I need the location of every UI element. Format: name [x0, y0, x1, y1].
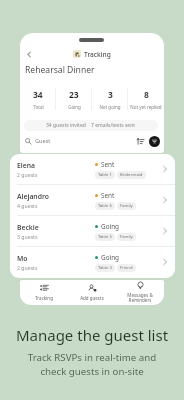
staticText: 3 guests	[17, 233, 38, 240]
button[interactable]: Guest	[25, 137, 136, 145]
staticText: Mo	[17, 254, 28, 263]
staticText: Messages & Reminders	[127, 292, 153, 304]
staticText: Bridesmaid	[120, 172, 143, 178]
staticText: Guest	[35, 137, 51, 145]
staticText: Rehearsal Dinner	[25, 64, 95, 76]
staticText: Not yet replied	[130, 104, 162, 110]
staticText: Add guests	[80, 295, 104, 301]
staticText: Friend	[120, 265, 133, 271]
staticText: Alejandro	[17, 192, 49, 201]
staticText: Table 6	[98, 203, 112, 209]
staticText: Sent	[101, 160, 115, 169]
button[interactable]: Messages & Reminders	[116, 280, 164, 305]
button[interactable]: Add guests	[68, 280, 116, 305]
staticText: Sent	[101, 191, 115, 200]
staticText: Going	[101, 253, 120, 262]
staticText: 2 guests	[17, 171, 38, 178]
button[interactable]: Alejandro	[10, 185, 175, 215]
staticText: Tracking	[84, 50, 111, 59]
staticText: Track RSVPs in real-time and check guest…	[0, 351, 184, 378]
staticText: 8	[144, 89, 149, 101]
staticText: Going	[68, 104, 81, 110]
staticText: 2 guests	[17, 264, 38, 271]
staticText: 3	[108, 89, 113, 101]
staticText: Manage the guest list	[0, 325, 184, 345]
staticText: Table 5	[98, 234, 112, 240]
staticText: Beckie	[17, 223, 39, 232]
button[interactable]: Mo	[10, 247, 175, 277]
staticText: 4 guests	[17, 202, 38, 209]
button[interactable]: Filter	[149, 136, 160, 147]
staticText: Total	[33, 104, 44, 110]
button[interactable]: Back	[23, 48, 35, 60]
staticText: 23	[69, 89, 79, 101]
button[interactable]: Sort	[136, 137, 145, 146]
staticText: Table 3	[98, 265, 112, 271]
staticText: Family	[120, 203, 133, 209]
staticText: 7 emails/texts sent	[91, 122, 136, 129]
staticText: Table 1	[98, 172, 112, 178]
staticText: 34	[33, 89, 43, 101]
staticText: Elena	[17, 161, 36, 170]
staticText: Family	[120, 234, 133, 240]
staticText: Tracking	[35, 295, 53, 301]
staticText: Not going	[99, 104, 121, 110]
button[interactable]: Tracking	[20, 280, 68, 305]
button[interactable]: Elena	[10, 154, 175, 184]
button[interactable]: Beckie	[10, 216, 175, 246]
staticText: 34 guests invited	[46, 122, 86, 129]
staticText: Going	[101, 222, 120, 231]
